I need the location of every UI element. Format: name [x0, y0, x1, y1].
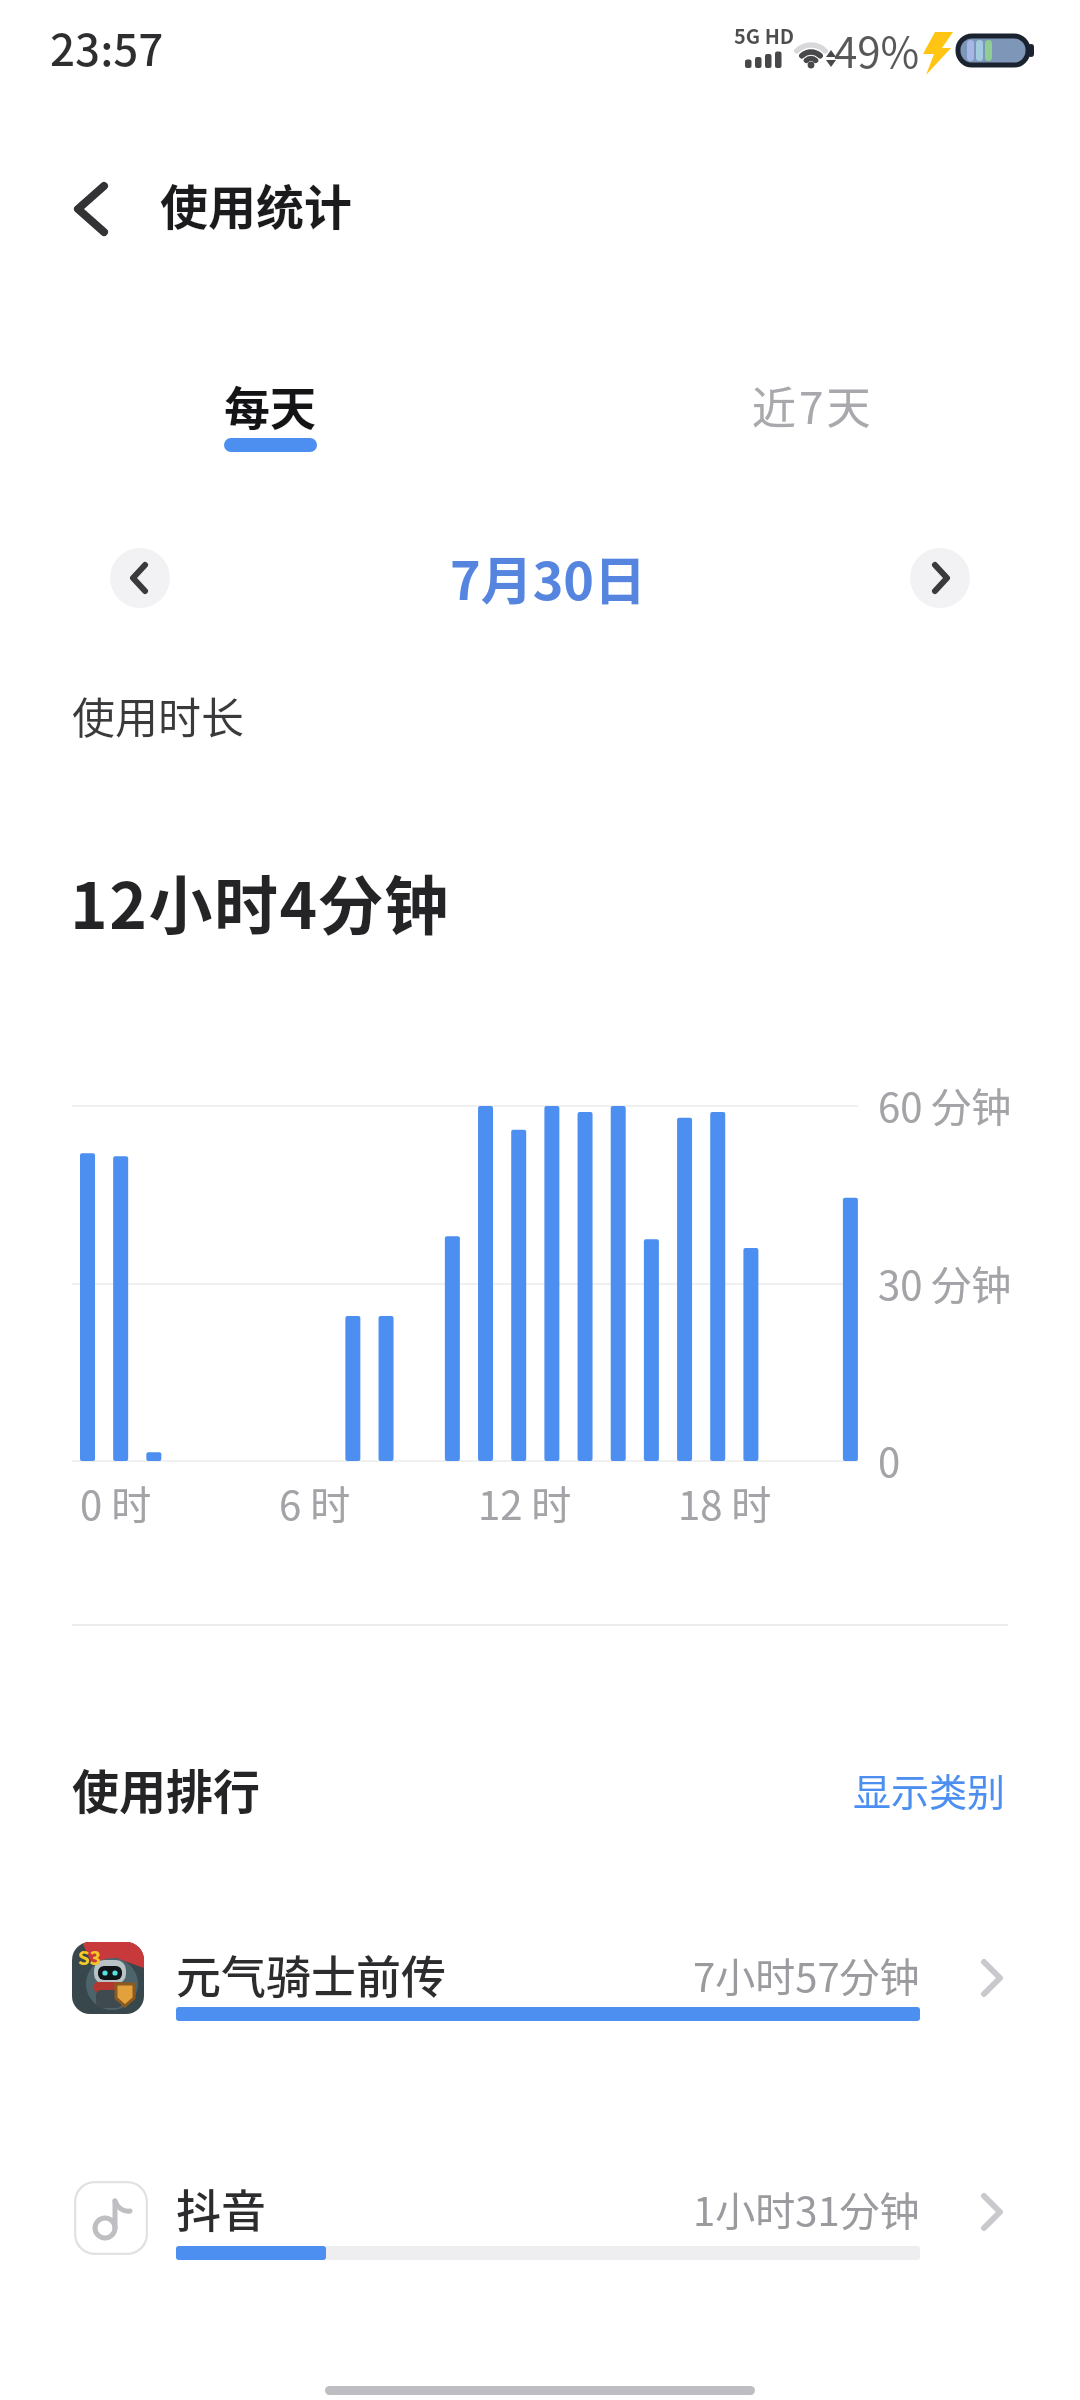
staticText: 12小时4分钟 — [70, 855, 450, 925]
staticText: 0 — [878, 1431, 901, 1471]
staticText: 18 时 — [678, 1474, 772, 1518]
staticText: 12 时 — [478, 1474, 572, 1518]
staticText: 每天 — [224, 372, 316, 422]
staticText: 1小时31分钟 — [693, 2180, 920, 2220]
staticText: 0 时 — [80, 1474, 152, 1518]
button[interactable] — [40, 2170, 1040, 2270]
staticText: S3 — [78, 1943, 102, 1965]
staticText: 使用统计 — [160, 169, 353, 223]
staticText: 使用时长 — [72, 684, 244, 728]
staticText: 使用排行 — [72, 1754, 260, 1804]
staticText: 6 时 — [279, 1474, 351, 1518]
button[interactable]: 每天 — [170, 375, 370, 460]
staticText: 49% — [834, 19, 920, 71]
staticText: 30 分钟 — [878, 1254, 1012, 1294]
button[interactable] — [110, 548, 170, 608]
staticText: 7小时57分钟 — [693, 1946, 920, 1986]
button[interactable]: 近7天 — [713, 384, 913, 432]
button[interactable] — [40, 1930, 1040, 2030]
staticText: 23:57 — [50, 15, 164, 67]
button[interactable] — [62, 178, 114, 240]
staticText: 元气骑士前传 — [176, 1942, 447, 1988]
staticText: 抖音 — [176, 2176, 267, 2222]
staticText: 5G HD — [734, 21, 795, 45]
button[interactable]: 显示类别 — [806, 1771, 1006, 1809]
button[interactable] — [910, 548, 970, 608]
staticText: 7月30日 — [450, 540, 647, 600]
staticText: 60 分钟 — [878, 1076, 1012, 1116]
staticText: 近7天 — [752, 373, 874, 421]
staticText: 显示类别 — [853, 1762, 1006, 1800]
